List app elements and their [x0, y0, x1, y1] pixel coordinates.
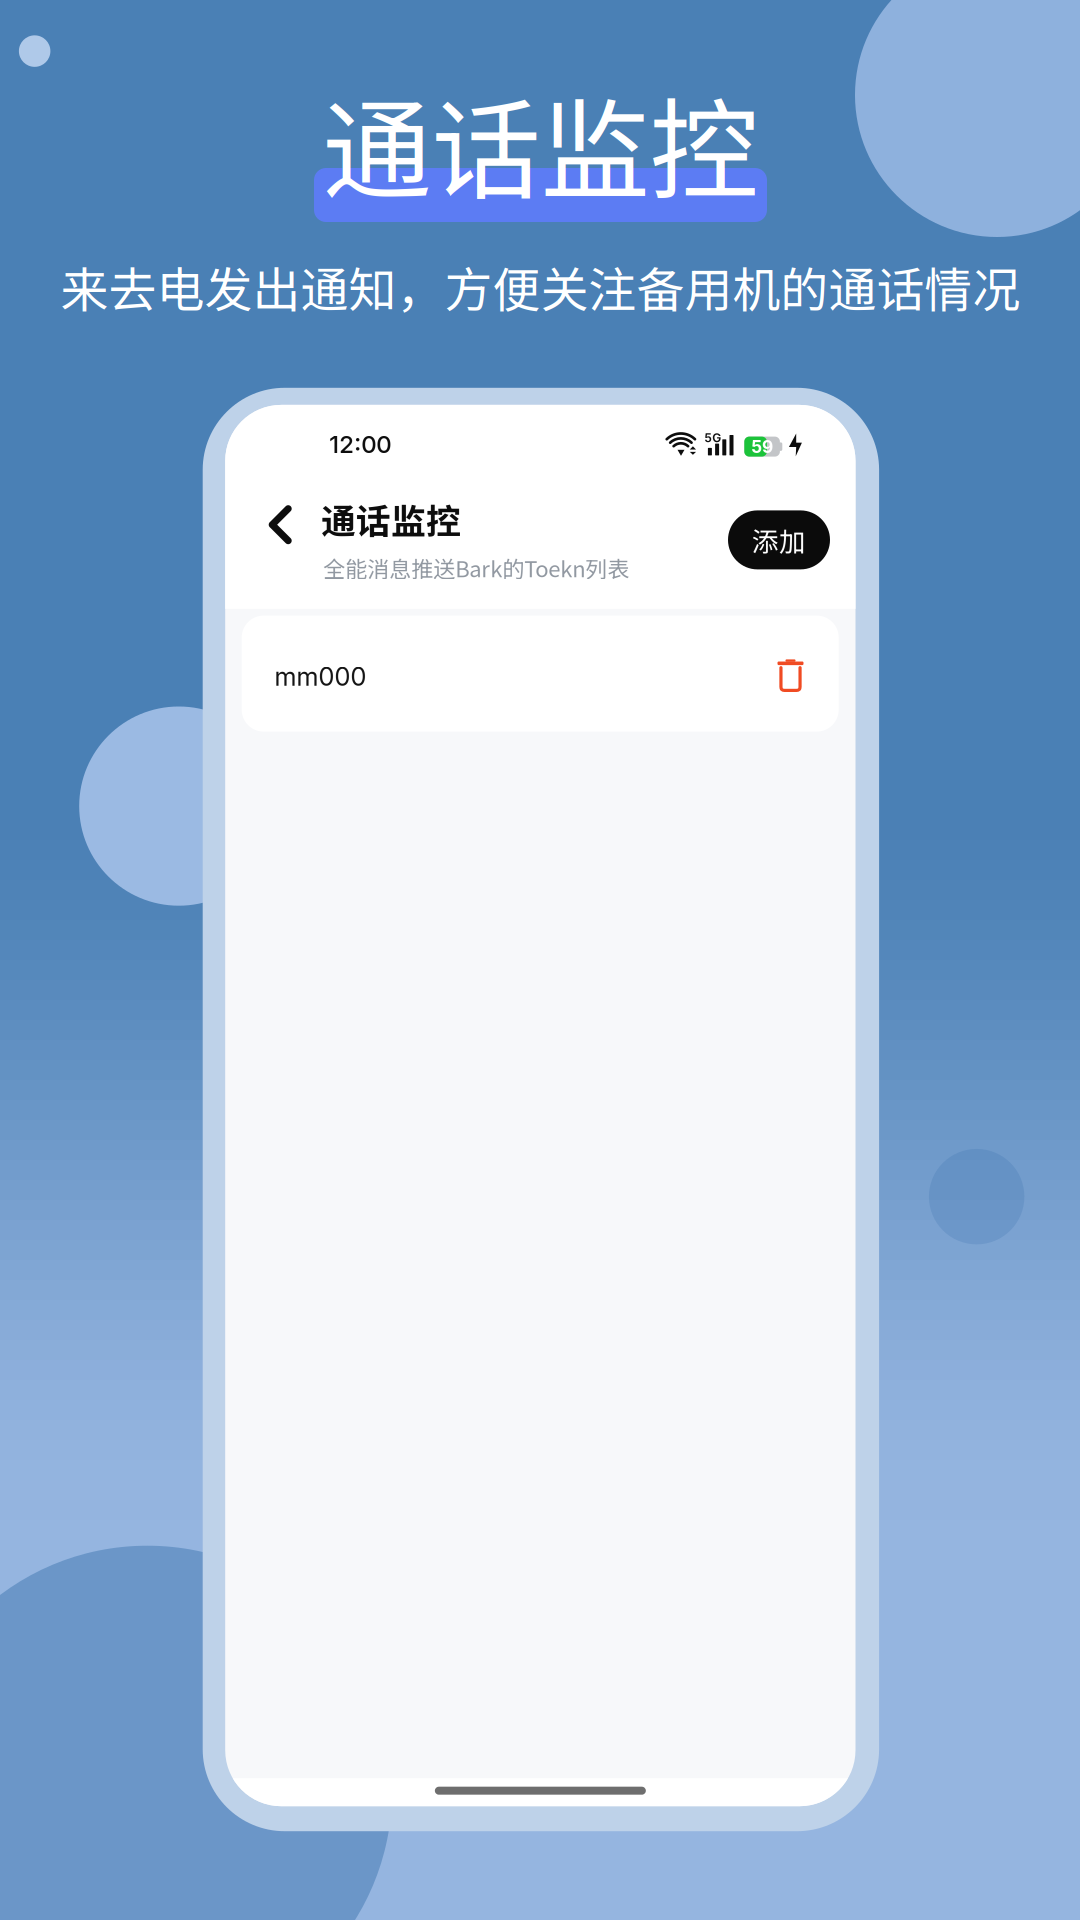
staticText: 59	[751, 436, 773, 457]
staticText: 来去电发出通知，方便关注备用机的通话情况	[60, 252, 1020, 321]
staticText: 添加	[752, 521, 806, 559]
button[interactable]: 添加	[728, 510, 830, 569]
button[interactable]: Back	[248, 487, 312, 563]
staticText: 全能消息推送Bark的Toekn列表	[323, 552, 629, 584]
staticText: mm000	[275, 661, 367, 692]
staticText: 通话监控	[322, 64, 758, 221]
staticText: 通话监控	[321, 494, 461, 544]
staticText: 12:00	[329, 430, 391, 459]
button[interactable]: mm000	[242, 616, 839, 732]
staticText: 5G	[704, 431, 721, 445]
